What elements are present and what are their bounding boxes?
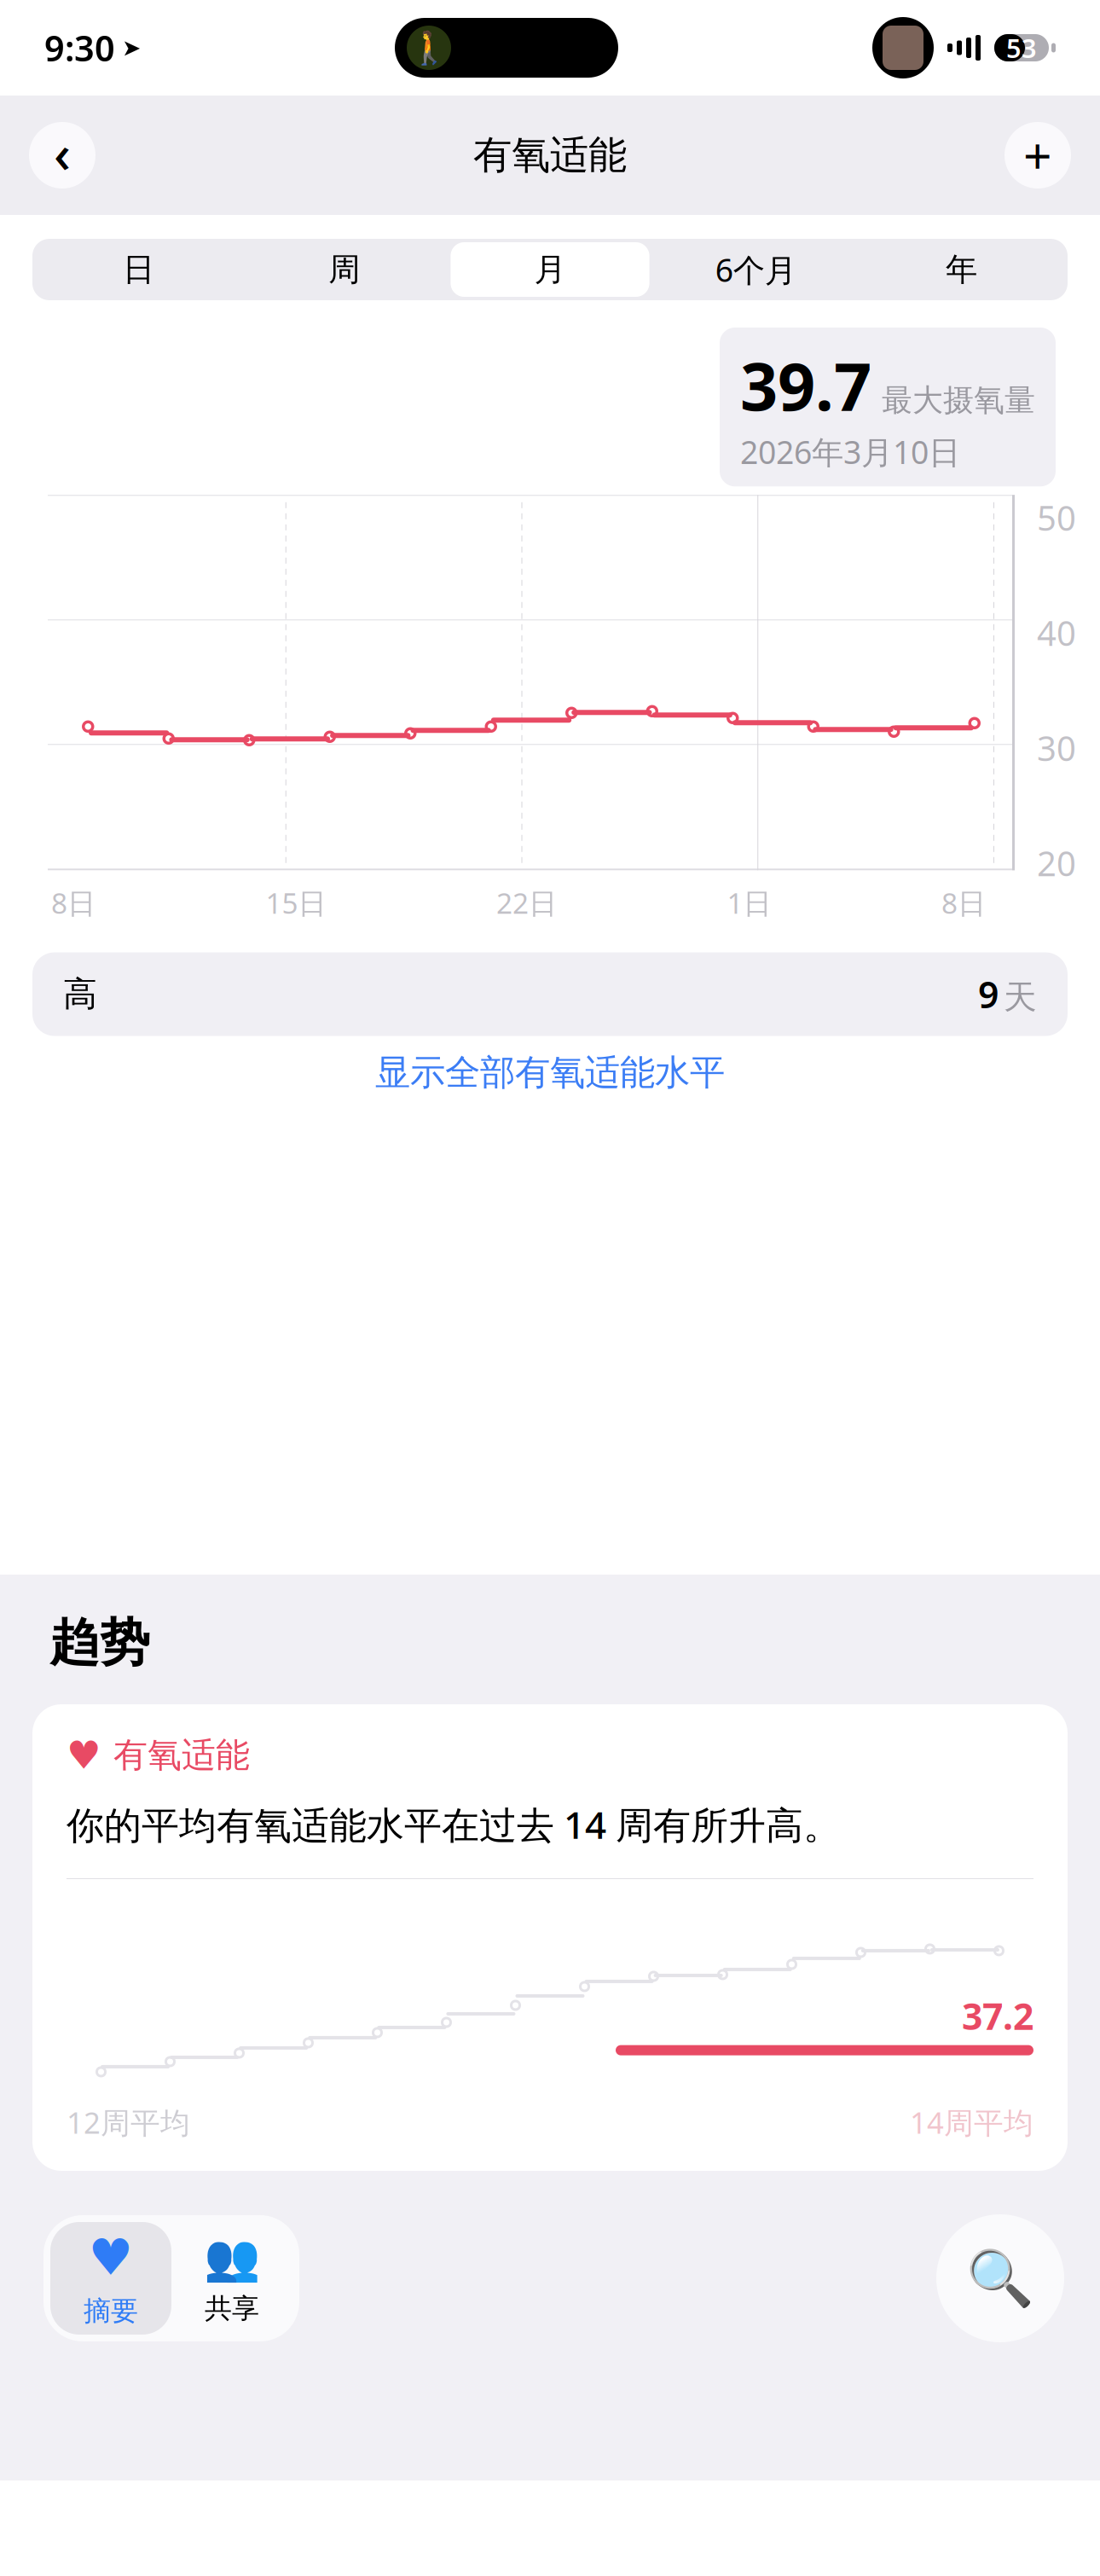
staticText: 最大摄氧量 xyxy=(882,382,1035,419)
staticText: 15日 xyxy=(266,884,326,922)
button[interactable]: 日 xyxy=(36,239,241,300)
staticText: 共享 xyxy=(205,2292,259,2325)
staticText: 摘要 xyxy=(84,2294,138,2328)
staticText: 20 xyxy=(1037,840,1076,886)
button[interactable]: 高 xyxy=(0,952,1100,1036)
staticText: 9 xyxy=(978,970,999,1018)
staticText: 天 xyxy=(1004,977,1037,1018)
staticText: ♥ xyxy=(88,2229,133,2286)
button[interactable]: 年 xyxy=(859,239,1064,300)
staticText: 37.2 xyxy=(962,1992,1033,2040)
staticText: 40 xyxy=(1037,610,1076,655)
staticText: 🚶 xyxy=(409,30,449,66)
staticText: 有氧适能 xyxy=(113,1734,250,1776)
staticText: 周 xyxy=(329,250,360,289)
staticText: 趋势 xyxy=(49,1612,150,1674)
staticText: 30 xyxy=(1037,725,1076,770)
button[interactable]: 显示全部有氧适能水平 xyxy=(0,1036,1100,1109)
staticText: 50 xyxy=(1037,495,1076,540)
button[interactable]: 月 xyxy=(447,239,653,300)
staticText: ‹ xyxy=(54,118,71,187)
staticText: 月 xyxy=(534,250,566,289)
staticText: 8日 xyxy=(51,884,96,922)
staticText: 6个月 xyxy=(715,248,796,291)
button[interactable]: 搜索 xyxy=(936,2214,1064,2342)
staticText: 39.7 xyxy=(740,341,871,429)
staticText: + xyxy=(1023,122,1052,188)
staticText: 1日 xyxy=(727,884,771,922)
staticText: 8日 xyxy=(941,884,986,922)
staticText: ♥ xyxy=(67,1733,101,1777)
staticText: 53 xyxy=(1006,30,1037,65)
staticText: 日 xyxy=(123,250,154,289)
staticText: 🔍 xyxy=(966,2247,1034,2309)
button[interactable]: 添加数据 xyxy=(1004,122,1071,189)
staticText: 你的平均有氧适能水平在过去 14 周有所升高。 xyxy=(67,1799,841,1849)
staticText: 12周平均 xyxy=(67,2103,190,2142)
staticText: 2026年3月10日 xyxy=(740,430,960,473)
staticText: 14周平均 xyxy=(910,2103,1033,2142)
staticText: 显示全部有氧适能水平 xyxy=(375,1051,725,1094)
button[interactable]: 6个月 xyxy=(653,239,859,300)
staticText: 年 xyxy=(946,250,977,289)
button[interactable]: 周 xyxy=(241,239,447,300)
staticText: 👥 xyxy=(204,2231,260,2283)
button[interactable]: ♥ xyxy=(50,2222,171,2335)
button[interactable]: 返回 xyxy=(29,118,96,193)
staticText: 22日 xyxy=(496,884,557,922)
staticText: 高 xyxy=(63,973,97,1015)
staticText: 有氧适能 xyxy=(473,132,627,179)
button[interactable]: 👥 xyxy=(171,2222,292,2335)
